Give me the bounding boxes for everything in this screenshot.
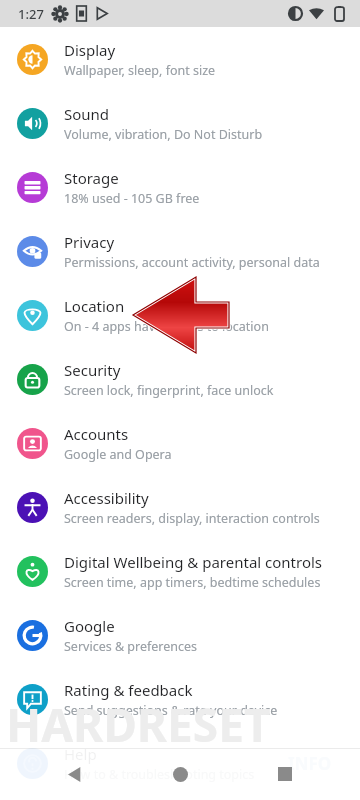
staticText: Volume, vibration, Do Not Disturb (64, 126, 263, 143)
button[interactable]: Security (0, 347, 360, 411)
staticText: Google and Opera (64, 446, 172, 463)
staticText: How to & troubleshooting topics (64, 766, 255, 783)
button[interactable]: Recent apps (268, 757, 302, 791)
button[interactable]: Privacy (0, 219, 360, 283)
button[interactable]: Sound (0, 91, 360, 155)
staticText: On - 4 apps have access to location (64, 318, 269, 335)
staticText: Sound (64, 104, 110, 124)
button[interactable]: Back (58, 757, 92, 791)
staticText: Accessibility (64, 488, 149, 508)
staticText: Rating & feedback (64, 680, 193, 700)
button[interactable]: Display (0, 27, 360, 91)
button[interactable]: Help (0, 731, 360, 795)
staticText: Location (64, 296, 125, 316)
button[interactable]: Location (0, 283, 360, 347)
staticText: Screen lock, fingerprint, face unlock (64, 382, 274, 399)
button[interactable]: Rating & feedback (0, 667, 360, 731)
staticText: INFO (288, 752, 332, 775)
staticText: Digital Wellbeing & parental controls (64, 552, 323, 572)
staticText: Services & preferences (64, 638, 198, 655)
button[interactable]: Storage (0, 155, 360, 219)
staticText: Display (64, 40, 116, 60)
staticText: Help (64, 744, 97, 764)
button[interactable]: Home (163, 757, 197, 791)
staticText: Send suggestions & rate your device (64, 702, 278, 719)
staticText: 1:27 (18, 5, 44, 23)
button[interactable]: Accessibility (0, 475, 360, 539)
staticText: Wallpaper, sleep, font size (64, 62, 216, 79)
button[interactable]: Digital Wellbeing & parental controls (0, 539, 360, 603)
staticText: Screen readers, display, interaction con… (64, 510, 320, 527)
staticText: 18% used - 105 GB free (64, 190, 200, 207)
button[interactable]: Google (0, 603, 360, 667)
staticText: Privacy (64, 232, 115, 252)
staticText: Screen time, app timers, bedtime schedul… (64, 574, 321, 591)
staticText: Security (64, 360, 121, 380)
staticText: Google (64, 616, 115, 636)
staticText: Permissions, account activity, personal … (64, 254, 320, 271)
button[interactable]: Accounts (0, 411, 360, 475)
staticText: Storage (64, 168, 119, 188)
staticText: HARDRESET (6, 693, 271, 756)
staticText: Accounts (64, 424, 129, 444)
